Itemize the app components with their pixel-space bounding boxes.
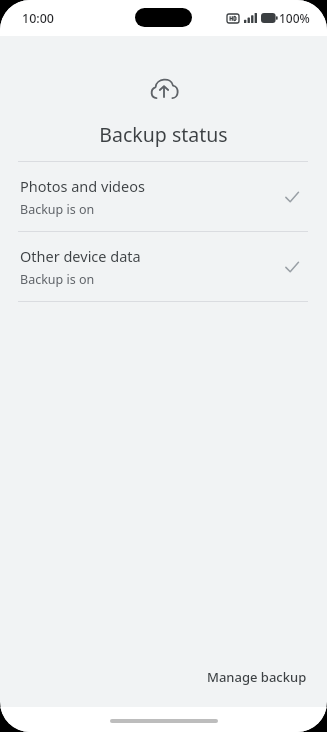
staticText: Other device data <box>20 246 141 266</box>
button[interactable]: Manage backup <box>197 660 317 694</box>
staticText: Photos and videos <box>20 176 145 196</box>
staticText: 10:00 <box>22 10 55 27</box>
button[interactable]: Other device data <box>0 232 327 301</box>
button[interactable]: Photos and videos <box>0 162 327 231</box>
staticText: Backup is on <box>20 271 95 288</box>
other: Backup on <box>279 184 305 210</box>
other: Backup on <box>279 254 305 280</box>
staticText: 100% <box>279 10 310 26</box>
staticText: Backup is on <box>20 201 95 218</box>
staticText: Backup status <box>0 121 327 148</box>
staticText: Manage backup <box>207 668 307 686</box>
